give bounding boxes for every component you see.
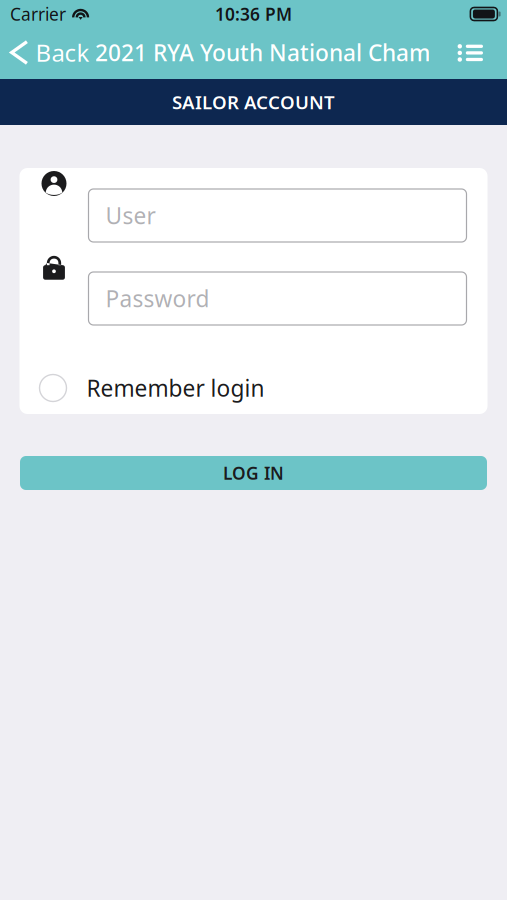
staticText: Password [105, 283, 209, 313]
staticText: User [105, 200, 155, 230]
staticText: Remember login [86, 373, 264, 403]
staticText: Back [36, 37, 90, 68]
staticText: SAILOR ACCOUNT [172, 90, 335, 114]
button[interactable]: Remember login [19, 362, 487, 414]
button[interactable]: Menu [443, 30, 507, 75]
staticText: Carrier [10, 2, 66, 25]
button[interactable]: LOG IN [20, 456, 487, 490]
staticText: 10:36 PM [215, 2, 292, 25]
staticText: LOG IN [223, 461, 284, 484]
button[interactable]: Back [0, 30, 98, 75]
staticText: 2021 RYA Youth National Cham [95, 37, 430, 67]
